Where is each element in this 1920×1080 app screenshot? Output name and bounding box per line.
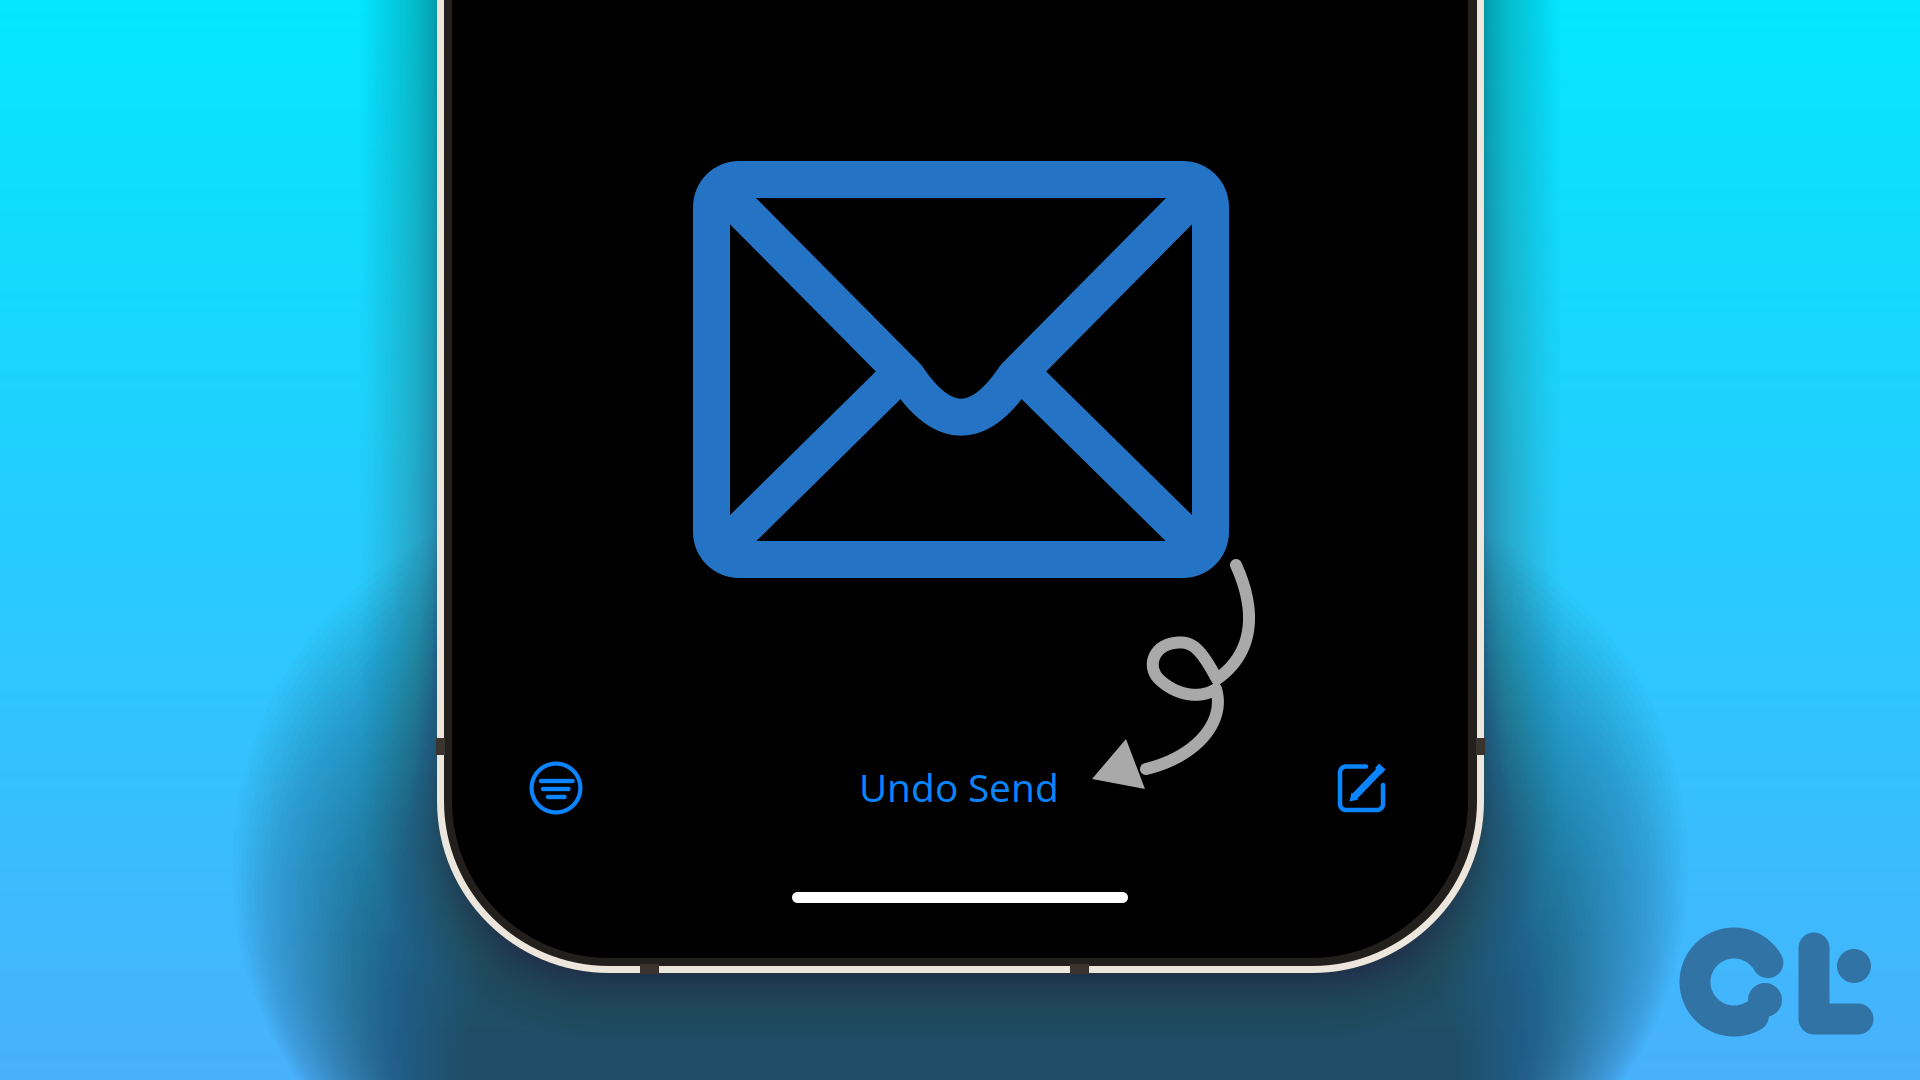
staticText: Undo Send: [859, 761, 1059, 813]
button[interactable]: Undo Send: [799, 737, 1119, 837]
button[interactable]: Compose new message: [1308, 738, 1416, 838]
button[interactable]: Filter mailbox: [502, 738, 610, 838]
